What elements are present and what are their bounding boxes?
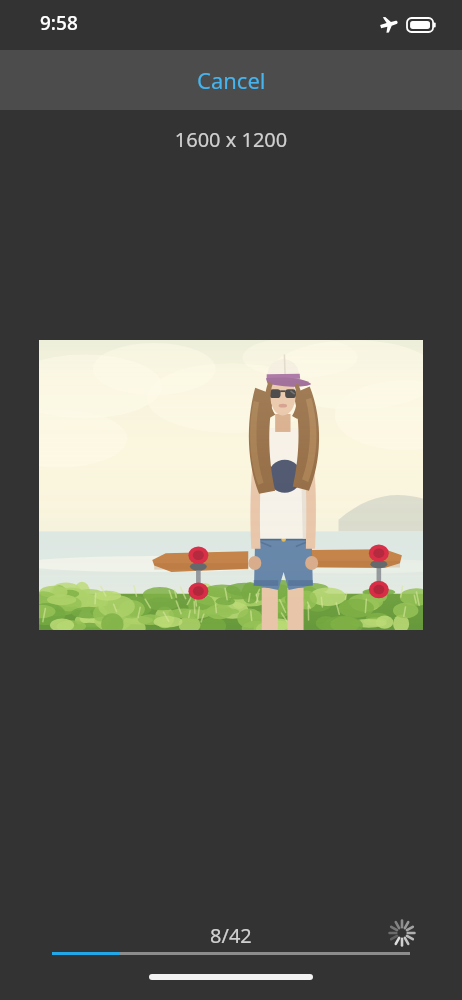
staticText: 9:58 <box>40 10 78 36</box>
other: Loading <box>389 920 415 946</box>
button[interactable]: Cancel <box>179 57 284 103</box>
button[interactable] <box>39 340 423 630</box>
other: Battery <box>407 18 436 32</box>
staticText: 1600 x 1200 <box>0 126 462 153</box>
other: Airplane mode <box>379 15 398 34</box>
staticText: 8/42 <box>210 922 252 949</box>
staticText: Cancel <box>197 65 266 95</box>
